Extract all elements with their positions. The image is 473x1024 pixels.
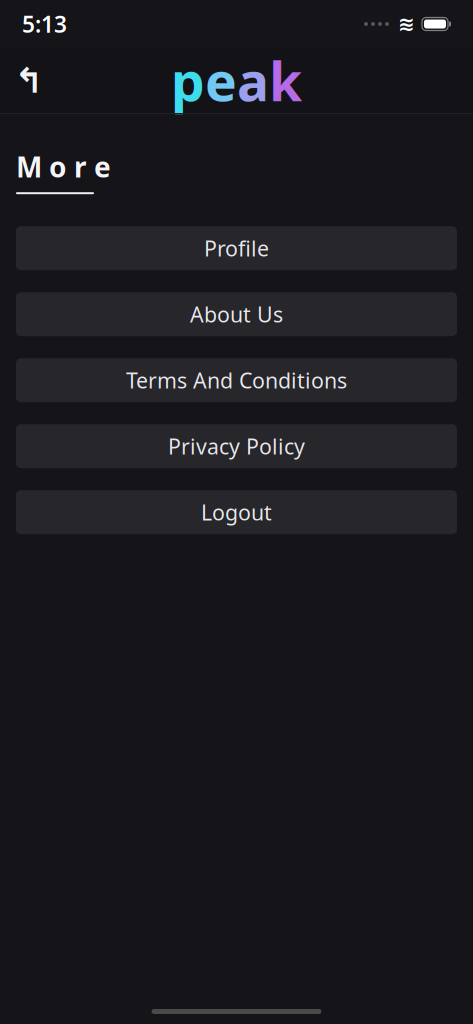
staticText: M o r e	[16, 148, 111, 185]
staticText: Privacy Policy	[168, 432, 305, 460]
staticText: Logout	[201, 498, 272, 526]
staticText: About Us	[190, 300, 283, 328]
staticText: a	[237, 45, 269, 116]
staticText: 5:13	[22, 9, 67, 39]
staticText: p	[171, 45, 205, 116]
staticText: e	[205, 45, 237, 116]
button[interactable]: About Us	[16, 292, 457, 336]
button[interactable]: Terms And Conditions	[16, 358, 457, 402]
button[interactable]: Profile	[16, 226, 457, 270]
staticText: ↰	[14, 61, 43, 100]
button[interactable]: Logout	[16, 490, 457, 534]
button[interactable]: Back	[6, 57, 52, 103]
button[interactable]: Privacy Policy	[16, 424, 457, 468]
staticText: Terms And Conditions	[126, 366, 347, 394]
staticText: ≋	[398, 13, 415, 35]
staticText: k	[269, 45, 302, 116]
staticText: Profile	[204, 234, 269, 262]
